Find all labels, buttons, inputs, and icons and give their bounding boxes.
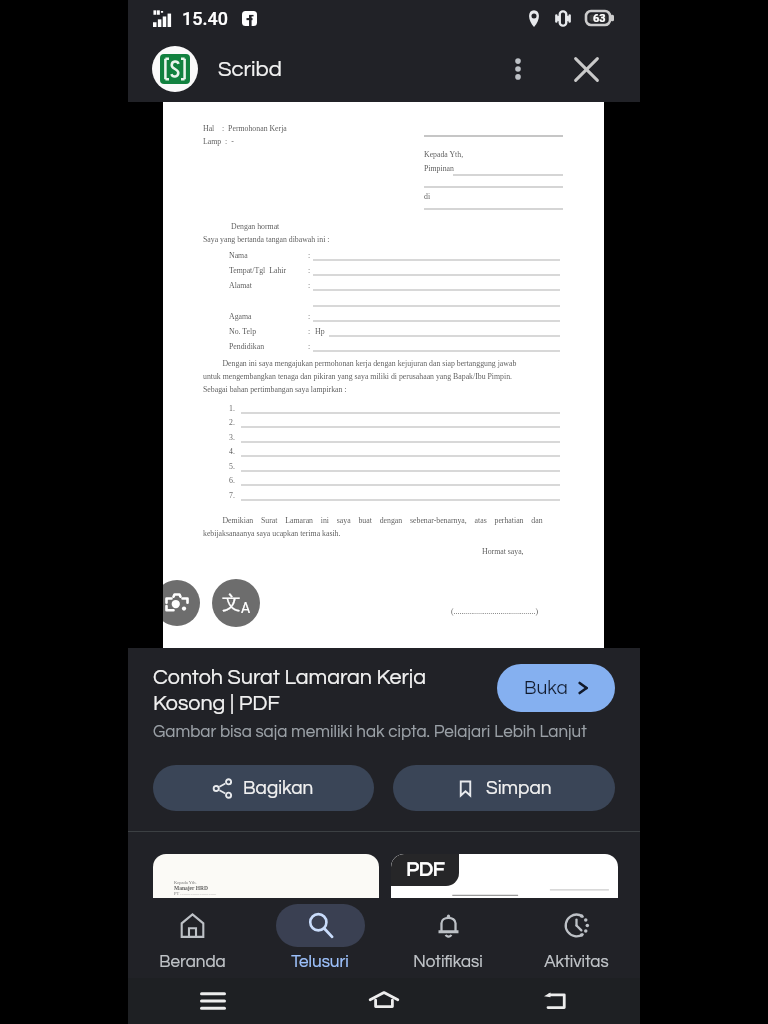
staticText: 2. — [229, 418, 235, 427]
button[interactable]: Recent apps — [190, 978, 236, 1024]
staticText: Nama — [229, 251, 248, 260]
button[interactable]: Translate — [212, 579, 260, 627]
staticText: Buka — [524, 678, 568, 698]
staticText: Pendidikan — [229, 342, 265, 351]
staticText: untuk mengembangkan tenaga dan pikiran y… — [203, 372, 512, 381]
staticText: No. Telp — [229, 327, 257, 336]
staticText: Notifikasi — [413, 953, 483, 971]
button[interactable]: PDF — [391, 854, 618, 900]
staticText: Agama — [229, 312, 252, 321]
staticText: Sebagai bahan pertimbangan saya lampirka… — [203, 385, 347, 394]
staticText: Kepada Yth. — [174, 880, 197, 885]
button[interactable]: Aktivitas — [512, 898, 640, 978]
staticText: Aktivitas — [544, 953, 609, 971]
staticText: Bagikan — [243, 778, 314, 798]
staticText: (.......................................… — [451, 607, 539, 616]
staticText: 3. — [229, 433, 235, 442]
button[interactable]: Bagikan — [153, 765, 374, 811]
button[interactable]: Kepada Yth. — [153, 854, 379, 900]
button[interactable]: Simpan — [393, 765, 615, 811]
staticText: Hp — [315, 327, 325, 336]
staticText: Hal : Permohonan Kerja — [203, 124, 287, 133]
staticText: PT ................................ — [174, 891, 217, 896]
staticText: Beranda — [159, 953, 226, 971]
staticText: 7. — [229, 491, 235, 500]
staticText: Scribd — [218, 58, 282, 81]
staticText: Dengan hormat — [231, 222, 280, 231]
staticText: : — [308, 312, 311, 321]
staticText: Alamat — [229, 281, 252, 290]
staticText: PDF — [406, 860, 445, 881]
staticText: kebijaksanaanya saya ucapkan terima kasi… — [203, 529, 341, 538]
staticText: Tempat/Tgl Lahir — [229, 266, 287, 275]
staticText: Hormat saya, — [482, 547, 524, 556]
staticText: Dengan ini saya mengajukan permohonan ke… — [203, 359, 517, 368]
staticText: 63 — [593, 12, 606, 25]
staticText: Manajer HRD — [174, 885, 208, 891]
staticText: Kepada Yth, — [424, 150, 464, 159]
button[interactable]: More options — [496, 47, 540, 91]
button[interactable]: Buka — [497, 664, 615, 712]
staticText: Gambar bisa saja memiliki hak cipta. Pel… — [153, 723, 587, 741]
staticText: : — [308, 251, 311, 260]
staticText: : — [308, 281, 311, 290]
staticText: di — [424, 192, 431, 201]
button[interactable]: Beranda — [128, 898, 256, 978]
staticText: Saya yang bertanda tangan dibawah ini : — [203, 235, 330, 244]
button[interactable]: Notifikasi — [384, 898, 512, 978]
staticText: Pimpinan — [424, 164, 454, 173]
staticText: : — [308, 342, 311, 351]
staticText: Lamp : - — [203, 137, 234, 146]
staticText: A — [241, 600, 251, 616]
staticText: Contoh Surat Lamaran Kerja Kosong | PDF — [153, 666, 487, 714]
staticText: 1. — [229, 404, 235, 413]
staticText: Telusuri — [291, 953, 349, 971]
button[interactable]: Telusuri — [256, 898, 384, 978]
staticText: 4. — [229, 447, 235, 456]
staticText: 15.40 — [182, 8, 228, 29]
button[interactable]: Close — [564, 47, 608, 91]
staticText: Demikian Surat Lamaran ini saya buat den… — [203, 516, 543, 525]
button[interactable]: Home — [361, 978, 407, 1024]
staticText: : — [308, 266, 311, 275]
staticText: 6. — [229, 476, 235, 485]
staticText: 5. — [229, 462, 235, 471]
staticText: : — [308, 327, 311, 336]
staticText: Simpan — [486, 778, 552, 798]
staticText: 文 — [222, 591, 241, 615]
button[interactable]: Back — [532, 978, 578, 1024]
button[interactable]: Search with Lens — [163, 580, 200, 626]
